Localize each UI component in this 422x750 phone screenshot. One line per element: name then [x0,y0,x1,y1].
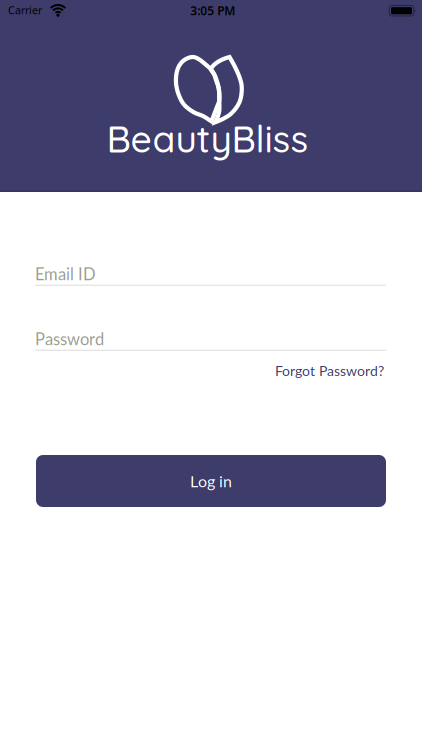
staticText: Password [35,329,104,349]
textField[interactable]: Email ID [35,264,386,284]
staticText: Log in [190,471,232,491]
staticText: Forgot Password? [275,362,384,379]
staticText: BeautyBliss [106,115,308,162]
button[interactable]: Forgot Password? [275,362,384,379]
staticText: Carrier [8,3,42,17]
staticText: 3:05 PM [190,3,235,18]
button[interactable]: Log in [36,455,386,507]
secureTextField[interactable]: Password [35,329,386,349]
staticText: Email ID [35,264,96,284]
